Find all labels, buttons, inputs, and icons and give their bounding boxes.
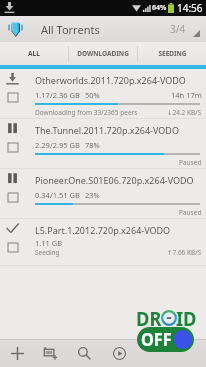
staticText: Downloading from 33/2365 peers (35, 108, 138, 117)
staticText: The.Tunnel.2011.720p.x264-VODO (35, 124, 179, 136)
staticText: ALL (28, 49, 40, 58)
button[interactable]: Search (71, 339, 97, 367)
staticText: Otherworlds.2011.720p.x264-VODO (35, 74, 186, 86)
button[interactable]: Start (106, 339, 132, 367)
button[interactable]: Add torrent (4, 339, 30, 367)
staticText: SEEDING (158, 49, 187, 58)
staticText: L5.Part.1.2012.720p.x264-VODO (35, 224, 171, 236)
staticText: Pioneer.One.S01E06.720p.x264-VODO (35, 174, 194, 186)
staticText: DROID (136, 305, 197, 332)
staticText: Paused (179, 208, 202, 217)
staticText: 64% (152, 3, 167, 13)
staticText: 50% (85, 90, 100, 100)
staticText: OFF (141, 328, 172, 351)
staticText: 23% (85, 190, 100, 200)
button[interactable]: L5.Part.1.2012.720p.x264-VODO (0, 219, 206, 266)
staticText: 14:56 (177, 1, 203, 15)
button[interactable]: DOWNLOADING (69, 42, 137, 65)
staticText: 1.11 GB (35, 238, 63, 248)
button[interactable]: ALL (0, 42, 68, 65)
staticText: 0.34/1.51 GB (35, 190, 80, 200)
staticText: Seeding (35, 248, 60, 257)
button[interactable]: Otherworlds.2011.720p.x264-VODO (0, 69, 206, 119)
staticText: ↑7.66 KB/S (167, 248, 202, 257)
button[interactable]: Add from file (37, 339, 63, 367)
staticText: All Torrents (41, 22, 100, 37)
button[interactable]: SEEDING (138, 42, 206, 65)
staticText: 1.17/2.36 GB (35, 90, 80, 100)
button[interactable]: Pioneer.One.S01E06.720p.x264-VODO (0, 169, 206, 219)
staticText: ↓24.2 KB/S (167, 108, 202, 117)
staticText: 14h 17m (171, 90, 202, 100)
staticText: Paused (179, 158, 202, 167)
staticText: 78% (85, 140, 100, 150)
staticText: 2.29/2.95 GB (35, 140, 80, 150)
staticText: DOWNLOADING (77, 49, 129, 58)
button[interactable]: App icon (0, 16, 30, 42)
button[interactable]: More options (186, 16, 206, 42)
button[interactable]: The.Tunnel.2011.720p.x264-VODO (0, 119, 206, 169)
staticText: 3/4 (170, 22, 186, 36)
